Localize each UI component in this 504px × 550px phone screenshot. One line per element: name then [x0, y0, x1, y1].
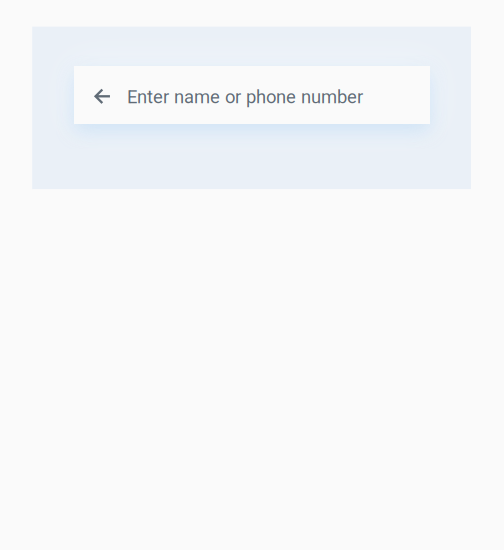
button[interactable]: Back: [74, 66, 128, 124]
staticText: Enter name or phone number: [127, 86, 363, 108]
button[interactable]: Enter name or phone number: [127, 66, 430, 124]
